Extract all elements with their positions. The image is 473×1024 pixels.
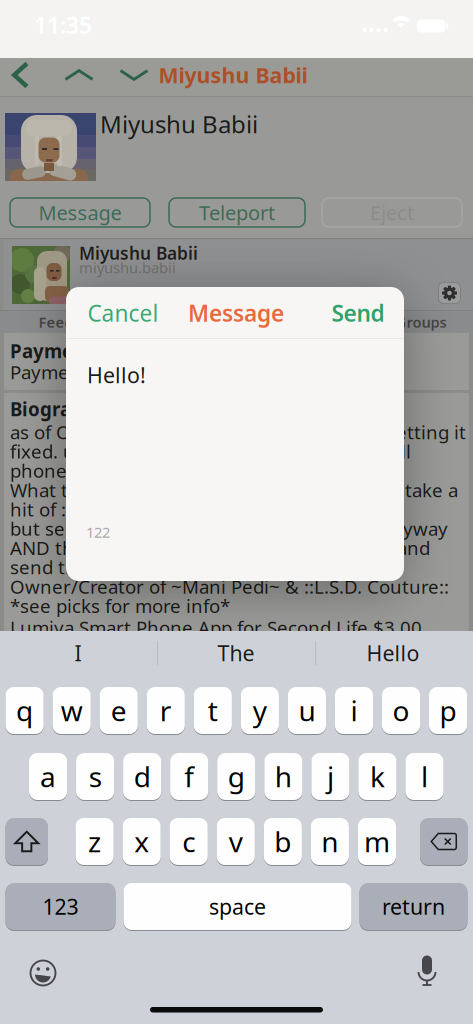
button[interactable]: p	[429, 687, 467, 734]
button[interactable]: z	[75, 818, 114, 865]
staticText: Payment Info On File	[10, 339, 206, 363]
staticText: What to do to pass the time? i know go t…	[10, 477, 470, 502]
staticText: 122	[86, 522, 110, 542]
staticText: return	[382, 892, 445, 921]
staticText: s	[89, 758, 102, 795]
staticText: y	[253, 692, 267, 729]
button[interactable]: Hello	[323, 634, 463, 672]
staticText: n	[321, 823, 338, 860]
button[interactable]: Groups	[362, 311, 473, 333]
staticText: v	[229, 823, 243, 860]
button[interactable]: o	[382, 687, 420, 734]
staticText: Hello	[366, 639, 419, 667]
button[interactable]: Profile settings	[438, 282, 460, 303]
button[interactable]: a	[29, 753, 67, 800]
staticText: you and	[359, 535, 430, 560]
staticText: z	[88, 823, 101, 860]
button[interactable]: Emoji	[22, 952, 63, 993]
staticText: d	[134, 758, 151, 795]
staticText: t	[208, 692, 218, 729]
staticText: Cancel	[87, 298, 158, 328]
staticText: cell	[381, 439, 411, 464]
staticText: Biography	[10, 397, 106, 421]
staticText: u	[298, 692, 315, 729]
button[interactable]: The	[166, 634, 306, 672]
staticText: e	[111, 692, 127, 729]
staticText: Message	[38, 199, 121, 226]
staticText: k	[370, 758, 385, 795]
button[interactable]: i	[335, 687, 373, 734]
staticText: g	[228, 758, 245, 795]
staticText: but seriously message me and i will answ…	[10, 516, 473, 541]
button[interactable]: Cancel	[81, 292, 164, 334]
staticText: and take a	[367, 477, 458, 502]
button[interactable]: g	[217, 753, 255, 800]
button[interactable]: I	[8, 634, 148, 672]
staticText: Feed	[38, 312, 73, 332]
staticText: as of Oct 2nd my phone is broken til i c…	[10, 420, 473, 444]
staticText: 11:35	[34, 10, 92, 40]
staticText: Payment info on file.	[10, 360, 192, 384]
button[interactable]: f	[170, 753, 208, 800]
button[interactable]: Picks	[118, 311, 236, 333]
button[interactable]: space	[123, 883, 351, 930]
staticText: Owner/Creator of ~Mani Pedi~ & ::L.S.D. …	[10, 574, 449, 599]
button[interactable]: e	[100, 687, 138, 734]
button[interactable]: 123	[5, 883, 115, 930]
button[interactable]: Delete	[420, 818, 467, 865]
staticText: c	[182, 823, 195, 860]
button[interactable]: h	[264, 753, 302, 800]
button[interactable]: c	[170, 818, 208, 865]
staticText: j	[327, 758, 334, 795]
button[interactable]: d	[123, 753, 161, 800]
button[interactable]: b	[264, 818, 302, 865]
staticText: Miyushu Babii	[158, 61, 307, 89]
button[interactable]: Back	[4, 55, 37, 94]
staticText: Send	[331, 298, 384, 328]
button[interactable]: Shift	[5, 818, 48, 865]
button[interactable]: return	[359, 883, 467, 930]
staticText: l	[421, 758, 428, 795]
staticText: b	[274, 823, 291, 860]
button[interactable]: Next	[112, 61, 155, 88]
staticText: 123	[42, 892, 78, 921]
button[interactable]: Message	[10, 198, 150, 227]
button[interactable]: Feed	[0, 311, 115, 333]
button[interactable]: t	[194, 687, 232, 734]
button[interactable]: l	[405, 753, 444, 800]
staticText: h	[275, 758, 292, 795]
staticText: Lumiya Smart Phone App for Second Life $…	[10, 615, 422, 640]
staticText: send than answer when i get back online	[10, 555, 374, 579]
button[interactable]: Dictation	[408, 948, 446, 996]
staticText: f	[184, 758, 194, 795]
button[interactable]: s	[76, 753, 114, 800]
staticText: The	[217, 639, 254, 667]
button[interactable]: Send	[325, 292, 390, 334]
staticText: Message	[188, 298, 284, 328]
button[interactable]: Events	[236, 311, 354, 333]
button[interactable]: u	[288, 687, 326, 734]
button[interactable]: Previous	[57, 61, 100, 88]
staticText: hit of ::L.S.D.:: lol	[10, 497, 155, 522]
button[interactable]: k	[358, 753, 396, 800]
button[interactable]: y	[241, 687, 279, 734]
button[interactable]: v	[217, 818, 255, 865]
button[interactable]: Eject	[322, 198, 462, 227]
button[interactable]: q	[5, 687, 44, 734]
button[interactable]: x	[123, 818, 161, 865]
staticText: Groups	[395, 312, 446, 332]
staticText: i	[350, 692, 357, 729]
staticText: Events	[271, 312, 318, 332]
staticText: x	[134, 823, 149, 860]
staticText: Miyushu Babii	[100, 108, 258, 140]
staticText: Hello!	[87, 361, 146, 389]
staticText: a	[40, 758, 56, 795]
button[interactable]: Teleport	[169, 198, 305, 227]
button[interactable]: m	[358, 818, 396, 865]
button[interactable]: j	[311, 753, 349, 800]
staticText: Miyushu Babii	[79, 241, 198, 264]
button[interactable]: r	[147, 687, 185, 734]
button[interactable]: n	[311, 818, 349, 865]
staticText: q	[16, 692, 33, 729]
button[interactable]: w	[53, 687, 91, 734]
